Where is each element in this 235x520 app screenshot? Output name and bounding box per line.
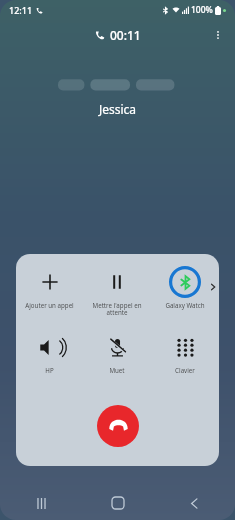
button[interactable]: Recents <box>26 488 56 518</box>
button[interactable]: Ajouter un appel <box>16 266 83 309</box>
button[interactable]: Mettre l'appel en attente <box>83 266 151 317</box>
button[interactable]: HP <box>16 331 83 374</box>
staticText: 100% <box>191 4 213 16</box>
button[interactable]: Home <box>103 488 133 518</box>
staticText: Clavier <box>153 366 217 374</box>
staticText: Muet <box>85 366 149 374</box>
button[interactable]: Galaxy Watch <box>151 266 219 309</box>
button[interactable]: More options <box>207 24 229 46</box>
button[interactable]: Back <box>179 488 209 518</box>
staticText: Galaxy Watch <box>153 301 217 309</box>
staticText: Ajouter un appel <box>18 301 81 309</box>
button[interactable]: Clavier <box>151 331 219 374</box>
button[interactable]: End call <box>97 405 139 447</box>
staticText: 00:11 <box>110 27 141 43</box>
staticText: 12:11 <box>9 4 33 16</box>
button[interactable]: Muet <box>83 331 151 374</box>
staticText: Mettre l'appel en attente <box>85 301 149 317</box>
staticText: Jessica <box>0 101 235 117</box>
staticText: HP <box>18 366 81 374</box>
